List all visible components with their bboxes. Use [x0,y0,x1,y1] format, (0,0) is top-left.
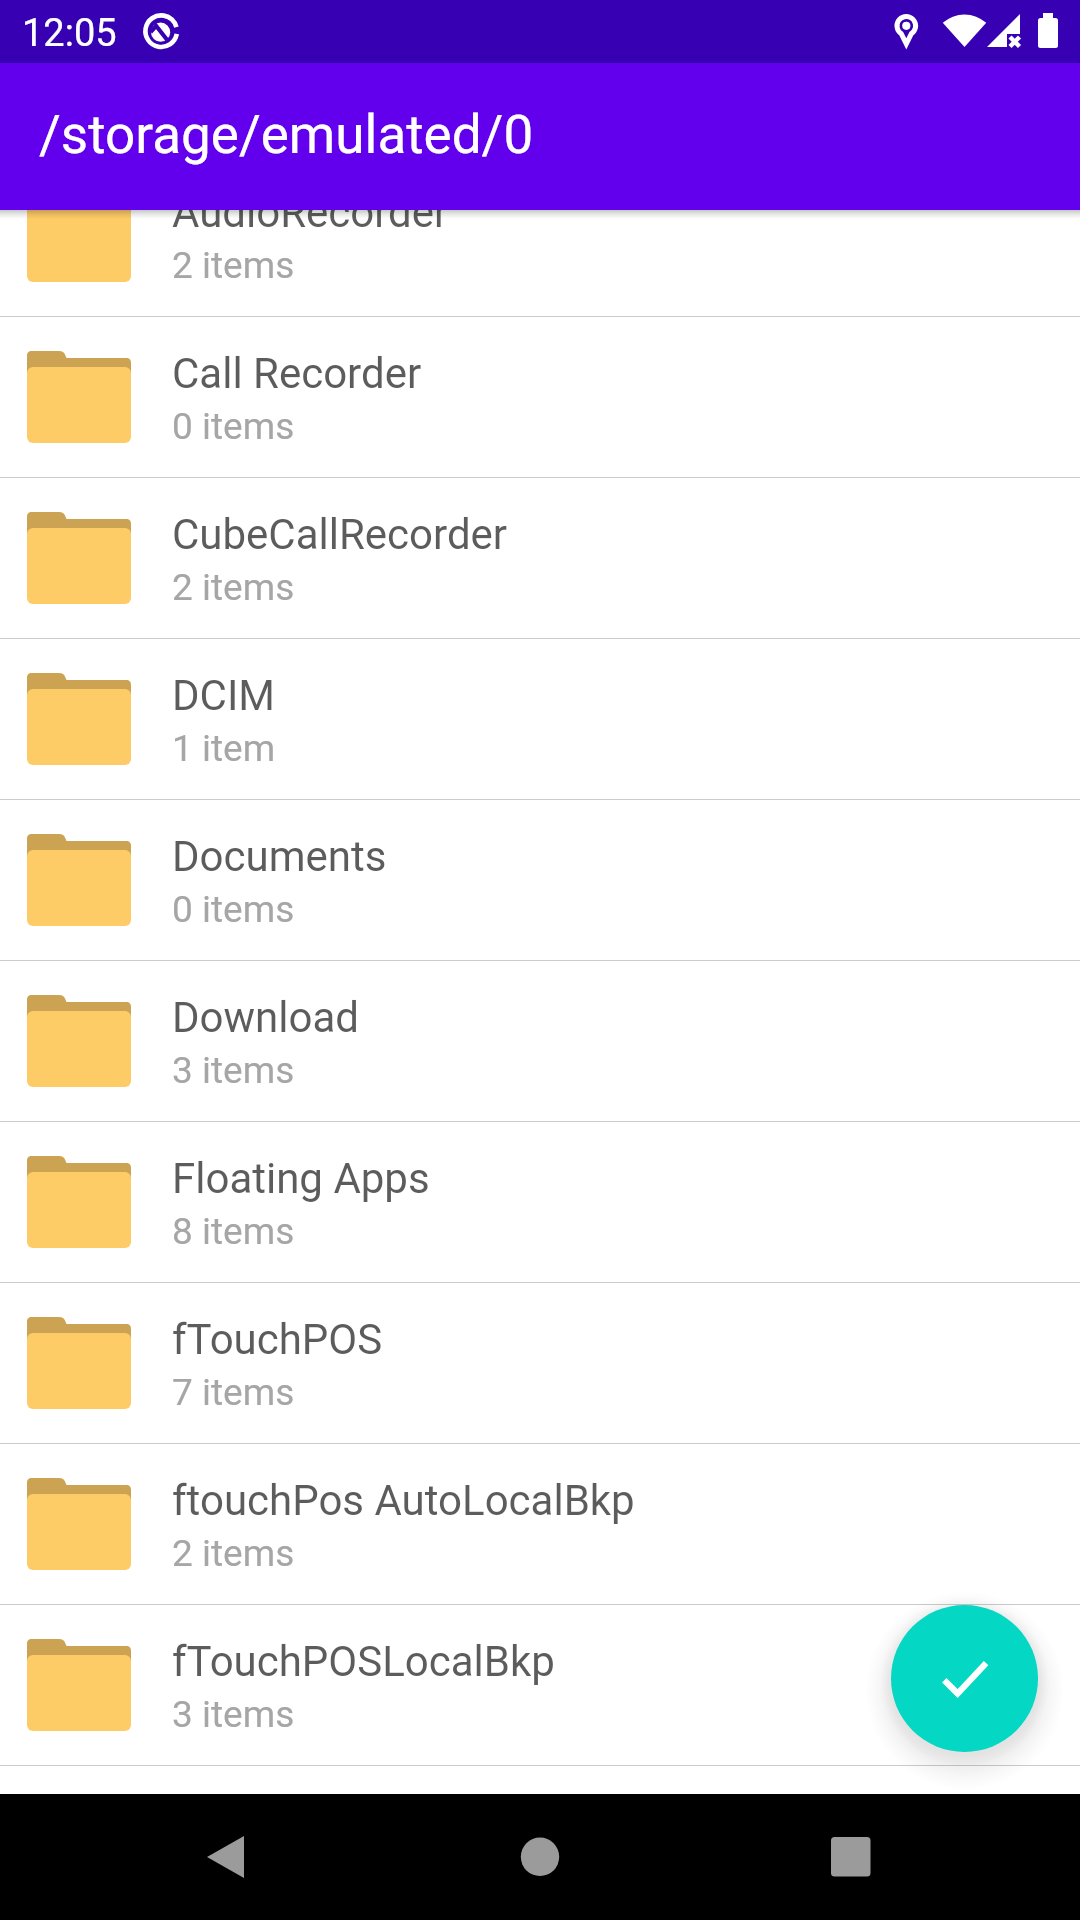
button[interactable]: DCIM [0,639,1080,800]
staticText: Documents [172,832,1052,881]
staticText: Call Recorder [172,349,1052,398]
button[interactable]: Call Recorder [0,317,1080,478]
staticText: 8 items [172,1210,295,1253]
button[interactable]: CubeCallRecorder [0,478,1080,639]
staticText: 3 items [172,1049,295,1092]
staticText: 0 items [172,888,295,931]
staticText: AudioRecorder [172,188,1052,237]
button[interactable]: ftouchPos AutoLocalBkp [0,1444,1080,1605]
staticText: fTouchPOSLocalBkp [172,1637,1052,1686]
button[interactable]: Home [360,1794,720,1920]
button[interactable]: Recent apps [720,1794,1080,1920]
staticText: 3 items [172,1693,295,1736]
staticText: ftouchPos AutoLocalBkp [172,1476,1052,1525]
button[interactable]: fTouchPOSLocalBkp [0,1605,1080,1766]
button[interactable]: Download [0,961,1080,1122]
staticText: Download [172,993,1052,1042]
staticText: fTouchPOS [172,1315,1052,1364]
button[interactable]: Documents [0,800,1080,961]
button[interactable]: Confirm selection [891,1605,1038,1752]
button[interactable]: Back [0,1794,360,1920]
staticText: DCIM [172,671,1052,720]
staticText: 0 items [172,405,295,448]
button[interactable]: Floating Apps [0,1122,1080,1283]
staticText: 1 item [172,727,276,770]
staticText: CubeCallRecorder [172,510,1052,559]
staticText: Floating Apps [172,1154,1052,1203]
staticText: /storage/emulated/0 [39,104,534,166]
button[interactable]: fTouchPOS [0,1283,1080,1444]
staticText: 2 items [172,1532,295,1575]
button[interactable]: AudioRecorder [0,156,1080,317]
staticText: 2 items [172,566,295,609]
staticText: 12:05 [22,11,117,56]
staticText: 7 items [172,1371,295,1414]
staticText: 2 items [172,244,295,287]
